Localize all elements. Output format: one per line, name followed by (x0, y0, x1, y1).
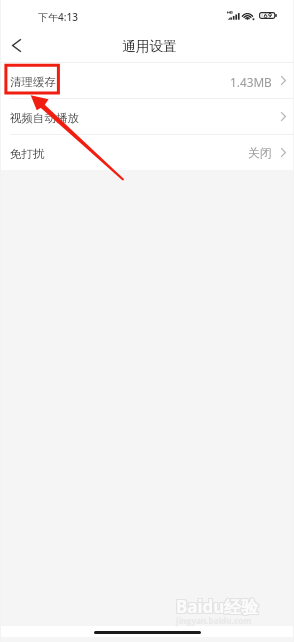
staticText: Baidu经验 (175, 594, 258, 617)
staticText: Baidu经验 (176, 594, 259, 617)
staticText: Baidu经验 (176, 596, 259, 619)
staticText: 清理缓存 (10, 75, 56, 89)
button[interactable]: 视频自动播放 (0, 99, 294, 134)
button[interactable]: Back (0, 29, 32, 61)
staticText: 通用设置 (122, 38, 177, 55)
staticText: Baidu经验 (177, 596, 260, 619)
staticText: 关闭 (248, 146, 272, 161)
button[interactable]: 清理缓存 (0, 63, 294, 98)
staticText: 视频自动播放 (10, 111, 79, 125)
staticText: Baidu经验 (177, 595, 260, 618)
staticText: jingyan.baidu.com (176, 615, 252, 626)
staticText: Baidu经验 (175, 596, 258, 619)
staticText: 下午4:13 (38, 10, 78, 24)
staticText: Baidu经验 (177, 594, 260, 617)
staticText: 1.43MB (230, 74, 272, 90)
staticText: Baidu经验 (176, 595, 259, 618)
button[interactable]: 免打扰 (0, 135, 294, 170)
staticText: 免打扰 (10, 147, 45, 161)
staticText: Baidu经验 (175, 595, 258, 618)
